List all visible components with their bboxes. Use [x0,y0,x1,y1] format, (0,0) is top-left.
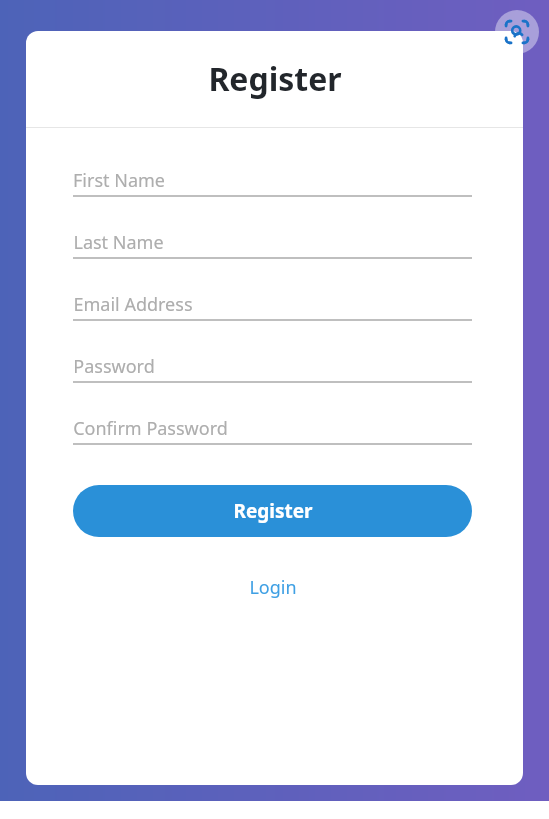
button[interactable]: Login [241,571,305,604]
button[interactable]: Search with Google Lens [495,10,539,54]
staticText: Register [208,57,342,101]
staticText: Register [233,498,313,524]
staticText: Password [73,354,155,379]
button[interactable]: Last Name [73,227,472,259]
button[interactable]: First Name [73,165,472,197]
button[interactable]: Register [73,485,472,537]
staticText: Last Name [73,230,164,255]
button[interactable]: Password [73,351,472,383]
staticText: Login [249,575,297,600]
button[interactable]: Email Address [73,289,472,321]
button[interactable]: Confirm Password [73,413,472,445]
staticText: Email Address [73,292,193,317]
staticText: First Name [73,168,165,193]
staticText: Confirm Password [73,416,228,441]
